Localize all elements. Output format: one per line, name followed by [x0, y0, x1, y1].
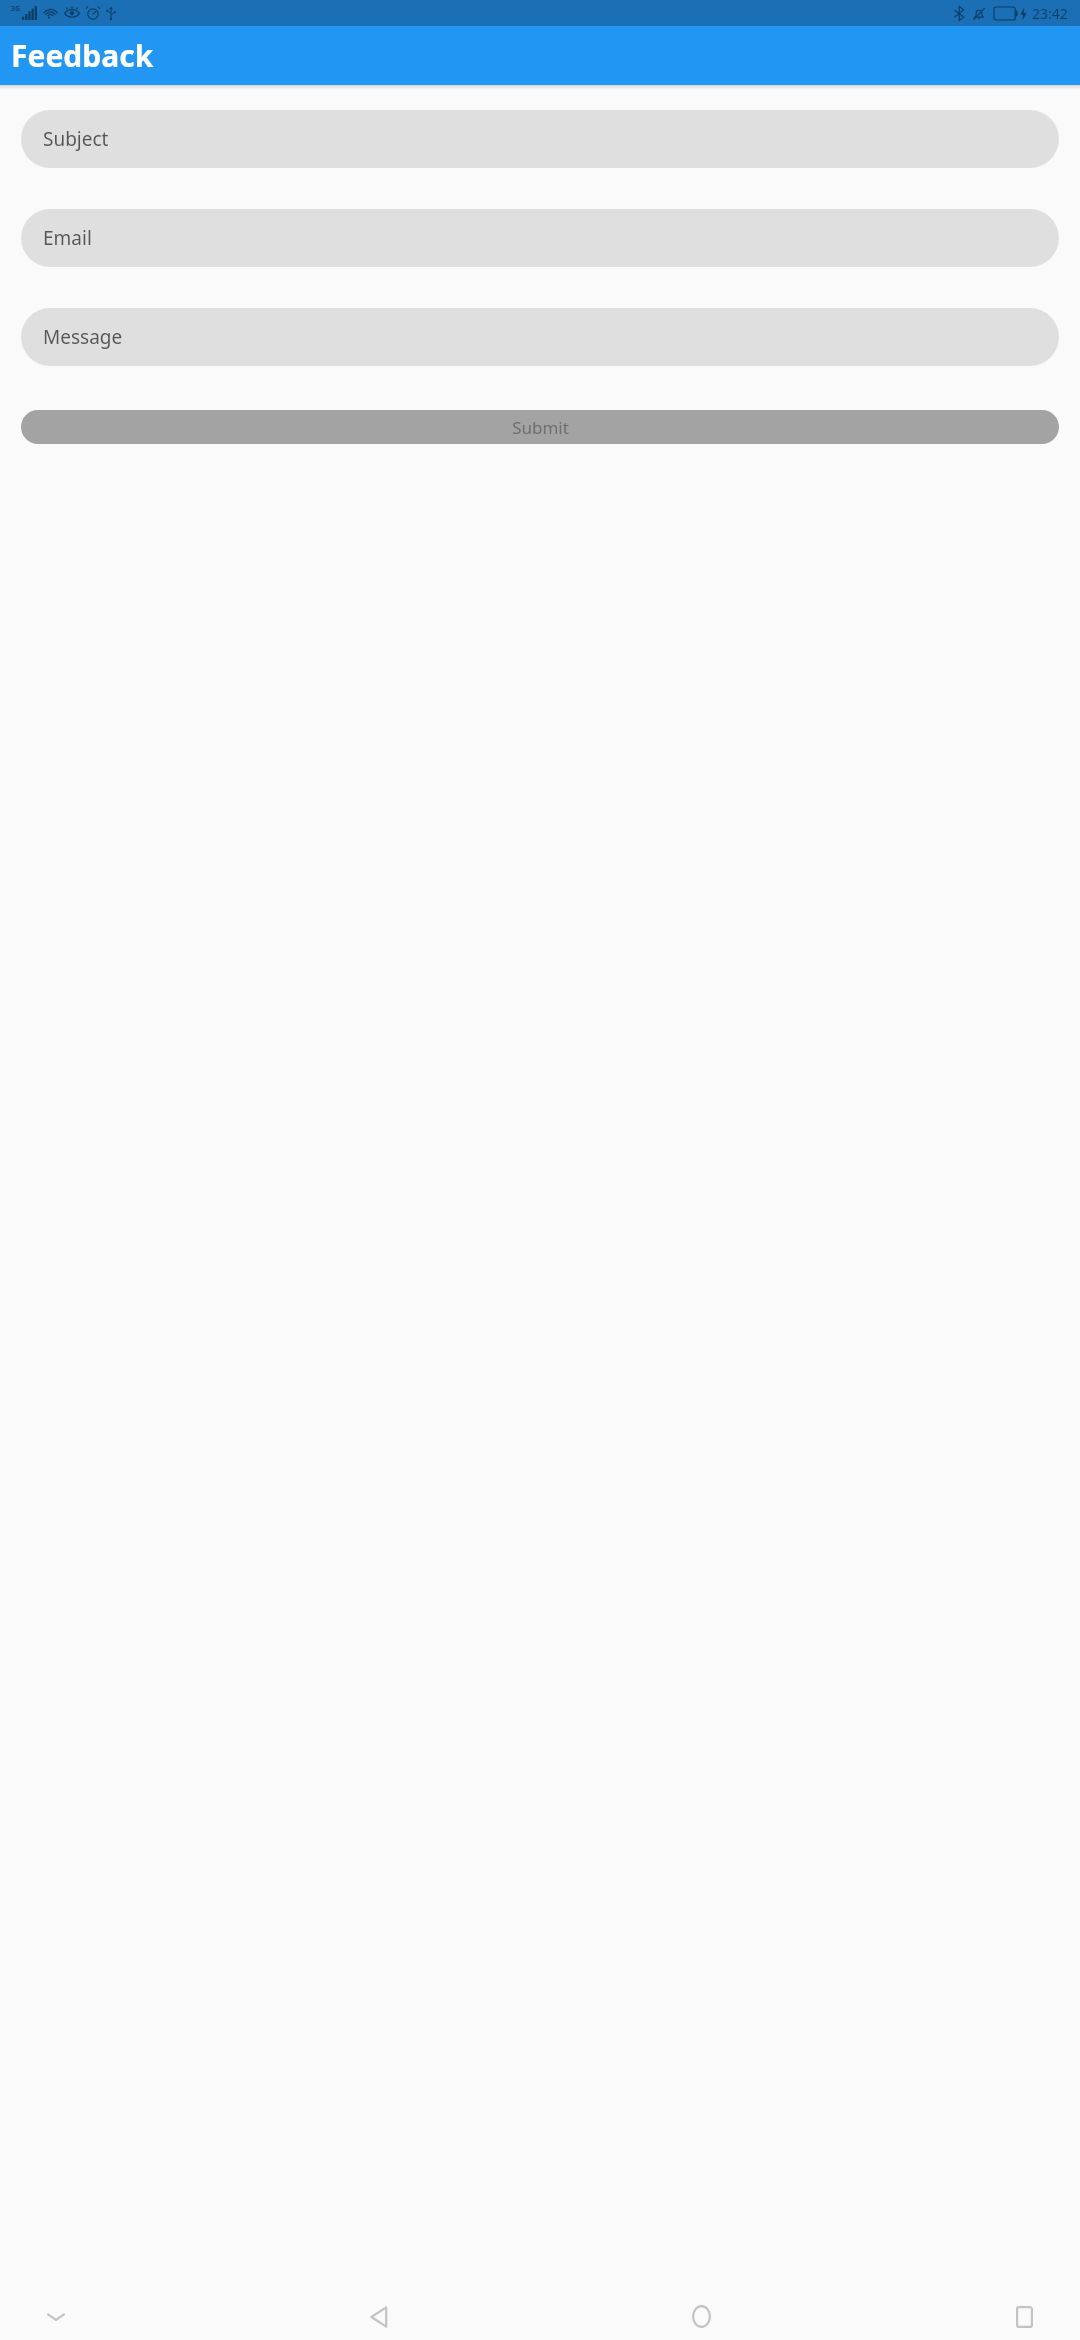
staticText: Message [43, 324, 123, 350]
button[interactable]: Home [665, 2293, 737, 2340]
button[interactable]: Email [21, 209, 1059, 267]
staticText: Email [43, 225, 92, 251]
button[interactable]: Recents [988, 2293, 1060, 2340]
staticText: Submit [512, 416, 569, 439]
button[interactable]: Submit [21, 410, 1059, 444]
button[interactable]: Subject [21, 110, 1059, 168]
staticText: Feedback [11, 35, 154, 76]
staticText: 23:42 [1032, 4, 1068, 23]
button[interactable]: Hide keyboard [20, 2293, 92, 2340]
staticText: Subject [43, 126, 109, 152]
staticText: 3G [11, 4, 21, 14]
button[interactable]: Message [21, 308, 1059, 366]
button[interactable]: Back [343, 2293, 415, 2340]
